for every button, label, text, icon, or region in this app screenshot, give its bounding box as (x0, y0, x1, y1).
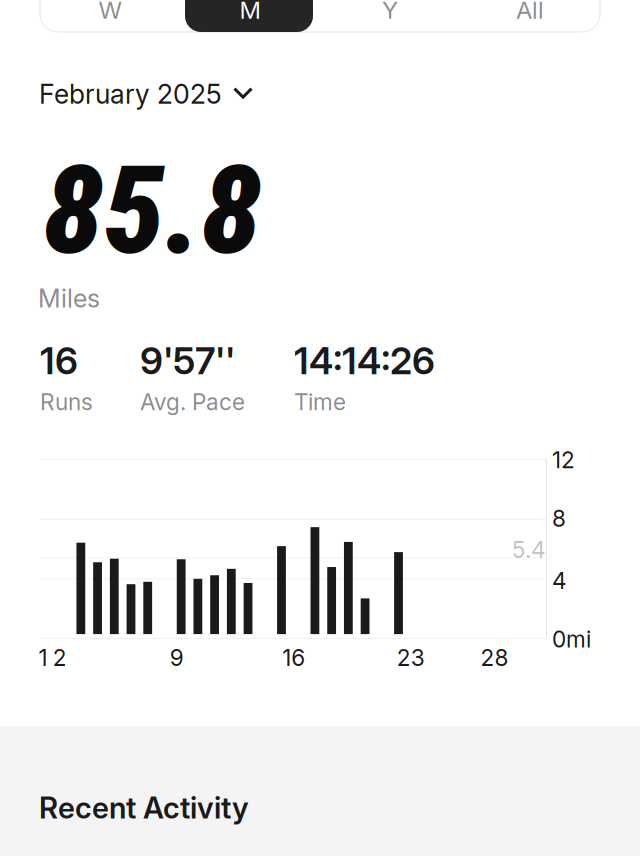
button[interactable]: Y (320, 0, 460, 32)
staticText: February 2025 (39, 78, 222, 110)
staticText: 23 (397, 644, 425, 671)
staticText: 16 (282, 644, 305, 671)
staticText: 28 (480, 644, 508, 671)
staticText: 0mi (552, 625, 591, 653)
staticText: 12 (552, 446, 575, 474)
button[interactable]: W (40, 0, 180, 32)
staticText: Y (382, 0, 398, 24)
staticText: Recent Activity (39, 790, 249, 825)
button[interactable]: M (180, 0, 320, 32)
staticText: 2 (53, 644, 67, 671)
staticText: 1 (38, 644, 47, 671)
staticText: Miles (38, 283, 100, 314)
staticText: 85.8 (43, 139, 262, 283)
staticText: 8 (552, 505, 566, 532)
button[interactable]: February 2025 (37, 74, 255, 114)
staticText: Runs (40, 388, 93, 416)
staticText: 9'57'' (140, 338, 235, 383)
staticText: 5.4 (512, 536, 546, 563)
staticText: 14:14:26 (294, 338, 435, 383)
staticText: 4 (552, 567, 567, 594)
staticText: 16 (40, 338, 78, 383)
staticText: 9 (170, 644, 184, 671)
staticText: W (98, 0, 121, 24)
staticText: All (516, 0, 544, 24)
button[interactable]: All (460, 0, 600, 32)
staticText: M (239, 0, 260, 24)
staticText: Time (294, 388, 346, 416)
staticText: Avg. Pace (140, 388, 245, 416)
